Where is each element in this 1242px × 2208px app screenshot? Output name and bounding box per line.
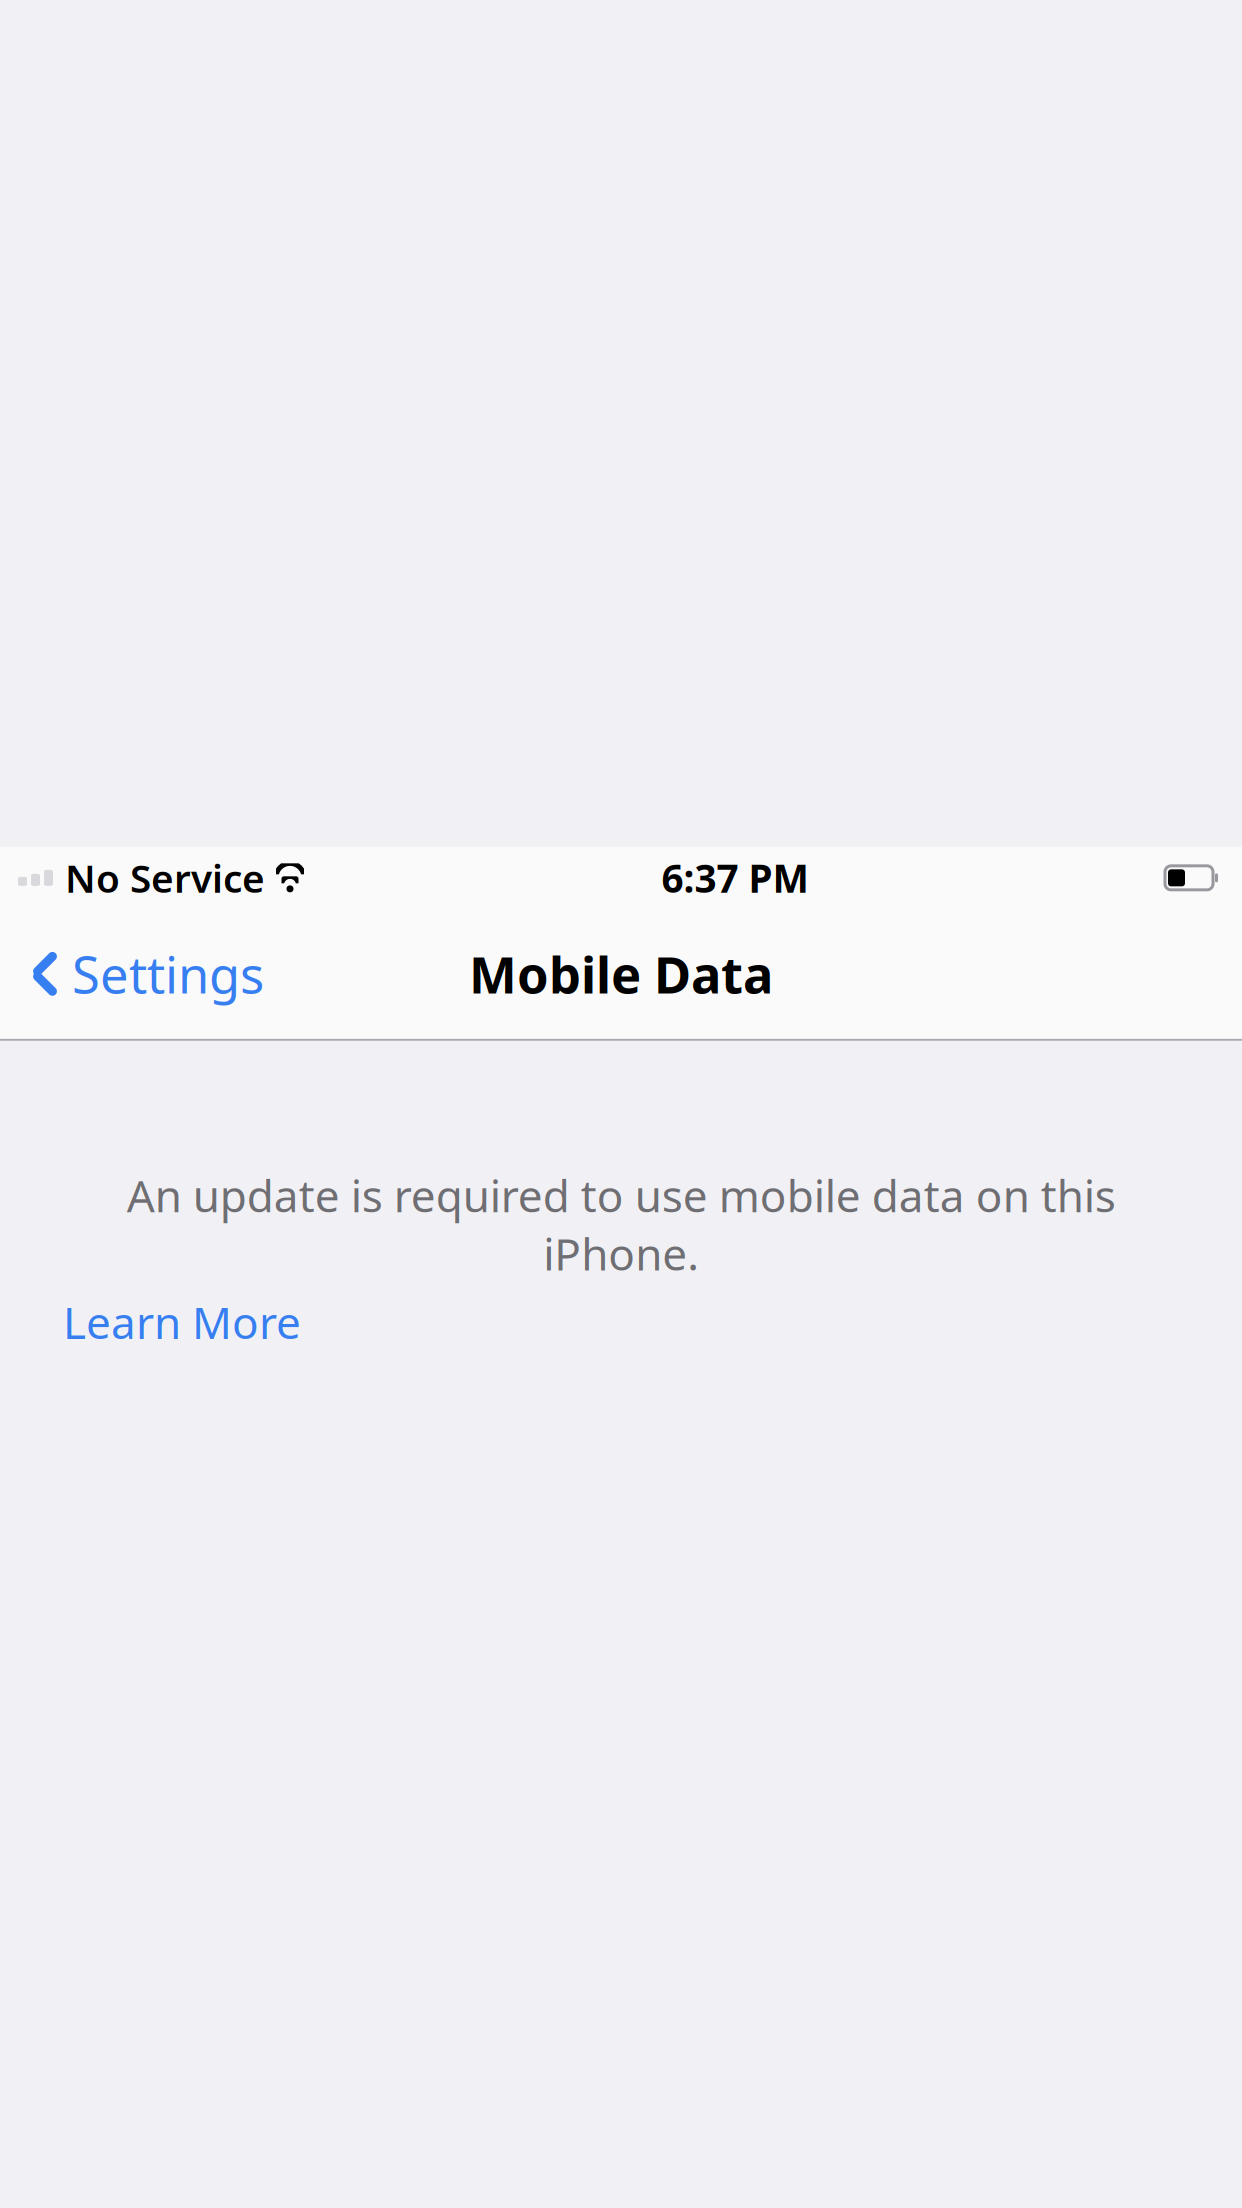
- staticText: An update is required to use mobile data…: [126, 1166, 1115, 1283]
- staticText: Mobile Data: [469, 940, 773, 1007]
- staticText: Settings: [72, 940, 264, 1007]
- button[interactable]: Back to Settings: [0, 932, 264, 1015]
- staticText: 6:37 PM: [661, 852, 808, 903]
- staticText: Learn More: [63, 1293, 301, 1351]
- staticText: No Service: [65, 852, 265, 903]
- button[interactable]: Learn More: [0, 1283, 364, 1361]
